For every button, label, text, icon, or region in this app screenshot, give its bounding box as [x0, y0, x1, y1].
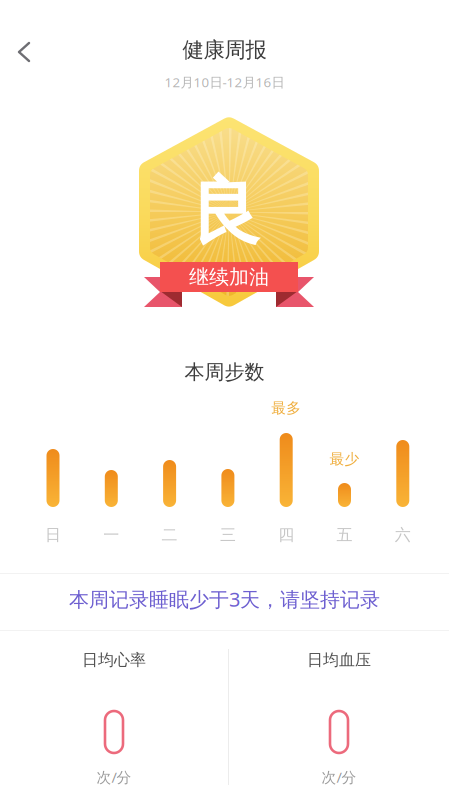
staticText: 本周记录睡眠少于3天，请坚持记录 [69, 586, 380, 612]
staticText: 本周步数 [184, 360, 264, 384]
staticText: 三 [220, 525, 236, 545]
staticText: 次/分 [321, 767, 356, 787]
button[interactable]: Back [2, 29, 46, 75]
staticText: 二 [162, 525, 178, 545]
staticText: 一 [103, 525, 119, 545]
staticText: 12月10日-12月16日 [164, 73, 284, 91]
staticText: 五 [336, 525, 352, 545]
staticText: 日均心率 [82, 650, 146, 670]
staticText: 日 [45, 525, 61, 545]
staticText: 六 [395, 525, 411, 545]
staticText: 健康周报 [182, 37, 266, 63]
staticText: 最少 [329, 450, 359, 468]
staticText: 次/分 [96, 767, 131, 787]
staticText: 日均血压 [307, 650, 371, 670]
staticText: 四 [278, 525, 294, 545]
staticText: 良 [189, 168, 261, 256]
staticText: 继续加油 [189, 265, 269, 289]
staticText: 最多 [271, 399, 301, 417]
